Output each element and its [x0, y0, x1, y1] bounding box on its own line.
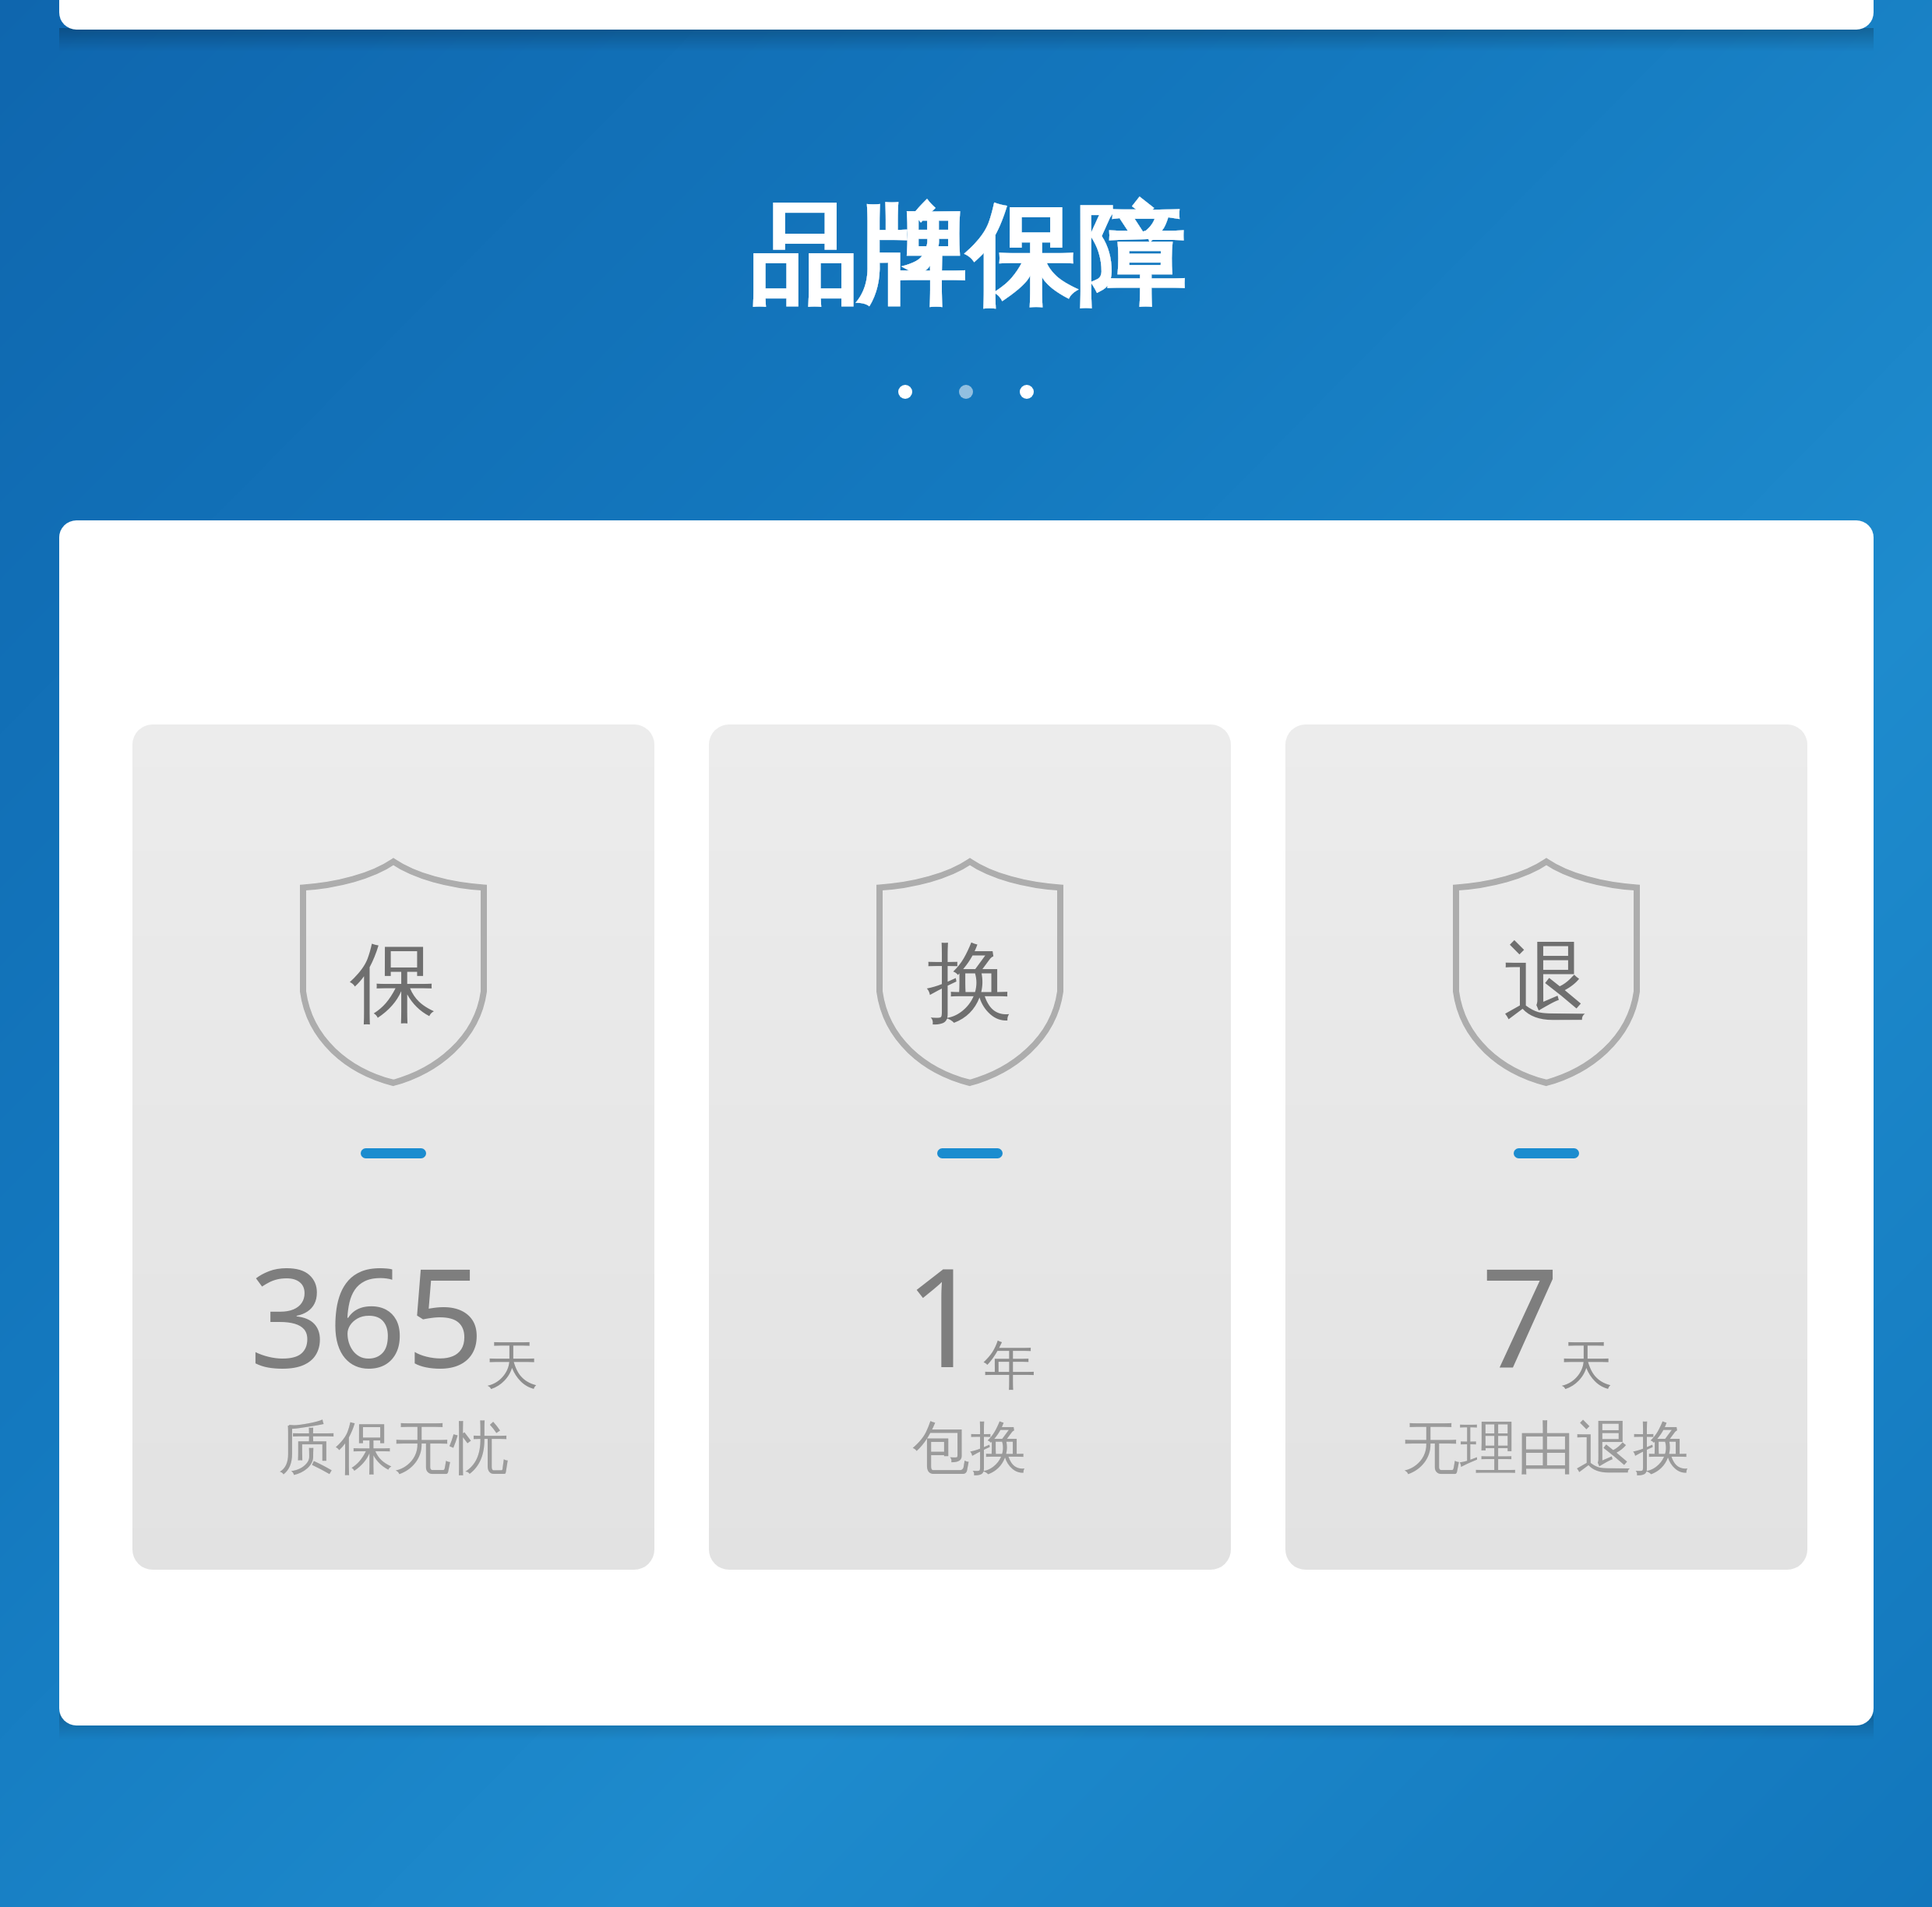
staticText: 品牌保障 [748, 189, 1184, 326]
staticText: 1 [904, 1221, 983, 1408]
button[interactable]: 保障 [132, 724, 654, 1570]
other: 保障 [300, 858, 487, 1086]
other: 保障 [1453, 858, 1640, 1086]
staticText: 退 [1503, 929, 1590, 1038]
staticText: 天 [1560, 1333, 1613, 1400]
staticText: 天 [485, 1333, 538, 1400]
staticText: 换 [926, 929, 1014, 1038]
button[interactable]: 保障 [709, 724, 1231, 1570]
other: 保障 [876, 858, 1063, 1086]
staticText: 年 [983, 1333, 1036, 1400]
button[interactable]: 保障 [1285, 724, 1807, 1570]
staticText: 质保无忧 [278, 1412, 509, 1485]
staticText: 包换 [912, 1412, 1028, 1485]
staticText: 保 [350, 929, 437, 1038]
staticText: 7 [1481, 1221, 1560, 1408]
staticText: 365 [249, 1221, 485, 1408]
staticText: 无理由退换 [1402, 1412, 1690, 1485]
